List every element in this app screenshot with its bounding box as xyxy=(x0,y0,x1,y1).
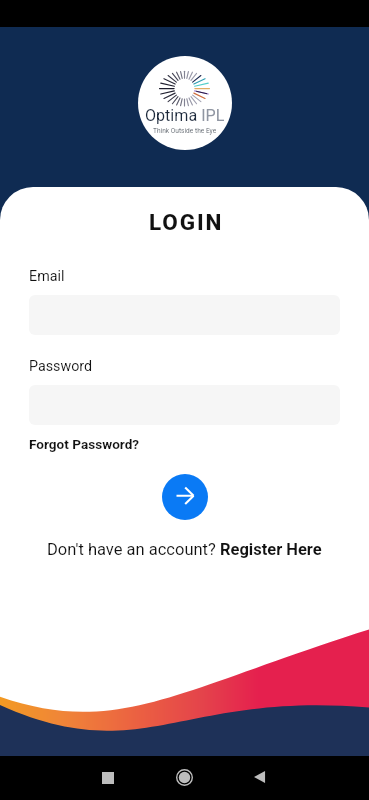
button[interactable]: Don't have an account? Register Here xyxy=(47,540,322,559)
staticText: Optima IPL xyxy=(145,106,225,125)
staticText: Think Outside the Eye xyxy=(153,127,217,135)
button[interactable]: Home xyxy=(176,769,193,786)
button[interactable]: Forgot Password? xyxy=(29,436,140,452)
button[interactable]: Back xyxy=(254,771,266,783)
staticText: Forgot Password? xyxy=(29,436,140,452)
staticText: Password xyxy=(29,358,93,375)
button[interactable]: Sign in xyxy=(162,474,208,520)
staticText: Email xyxy=(29,268,65,285)
staticText: Don't have an account? Register Here xyxy=(47,540,322,559)
staticText: LOGIN xyxy=(149,209,224,235)
